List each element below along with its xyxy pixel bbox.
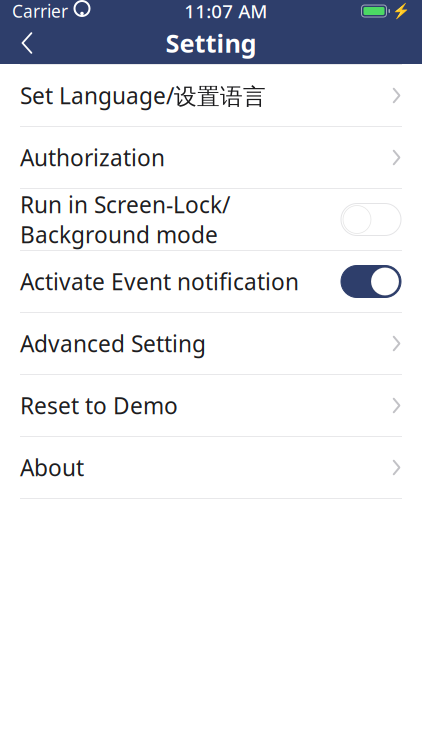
button[interactable]: Reset to Demo [0,375,422,436]
button[interactable]: Set Language/设置语言 [0,65,422,126]
button[interactable]: Authorization [0,127,422,188]
staticText: 11:07 AM [184,0,267,23]
button[interactable]: Advanced Setting [0,313,422,374]
staticText: Activate Event notification [20,266,299,296]
staticText: About [20,452,84,482]
staticText: Carrier [12,0,68,22]
staticText: Setting [165,26,256,60]
staticText: Authorization [20,142,165,172]
button[interactable]: Run in Screen-Lock/Background mode [0,189,422,250]
button[interactable]: Activate Event notification [0,251,422,312]
staticText: Run in Screen-Lock/Background mode [20,189,230,250]
staticText: ⚡ [392,3,410,19]
button[interactable]: Back [0,22,54,64]
staticText: Set Language/设置语言 [20,80,266,111]
staticText: Advanced Setting [20,328,206,358]
button[interactable]: About [0,437,422,498]
staticText: Reset to Demo [20,390,178,420]
